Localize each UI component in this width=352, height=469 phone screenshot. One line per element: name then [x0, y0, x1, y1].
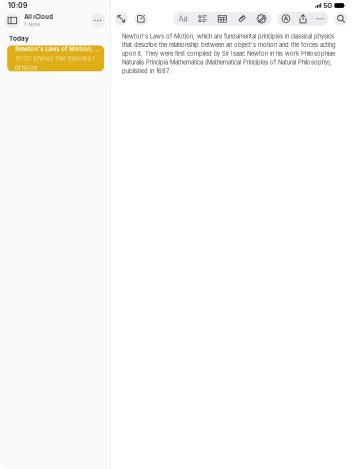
button[interactable]: More: [311, 12, 329, 26]
button[interactable]: Share: [294, 12, 311, 26]
button[interactable]: Expand note: [114, 12, 128, 26]
staticText: physics that describe the r…: [33, 55, 101, 62]
button[interactable]: Toggle Sidebar: [5, 13, 20, 28]
button[interactable]: Checklist: [193, 12, 212, 26]
staticText: All iCloud: [24, 13, 53, 20]
staticText: Newton's Laws of Motion, which are funda…: [122, 33, 336, 75]
button[interactable]: Newton's Laws of Motion, w…: [7, 45, 104, 71]
button[interactable]: Format: [173, 12, 193, 26]
staticText: 5G: [323, 1, 332, 10]
button[interactable]: Intelligence: [277, 12, 294, 26]
staticText: Newton's Laws of Motion, w…: [15, 45, 101, 53]
staticText: Aa: [179, 14, 188, 23]
button[interactable]: Markup: [252, 12, 271, 26]
staticText: 10:00: [15, 55, 31, 62]
staticText: Today: [9, 34, 29, 42]
button[interactable]: New note: [134, 12, 148, 25]
button[interactable]: Attachment: [232, 12, 252, 26]
button[interactable]: Search: [334, 12, 348, 26]
button[interactable]: More options: [91, 13, 105, 28]
staticText: Notes: [22, 64, 38, 71]
button[interactable]: Table: [212, 12, 232, 26]
staticText: 10:09: [8, 1, 27, 10]
staticText: 1 Note: [24, 21, 40, 28]
